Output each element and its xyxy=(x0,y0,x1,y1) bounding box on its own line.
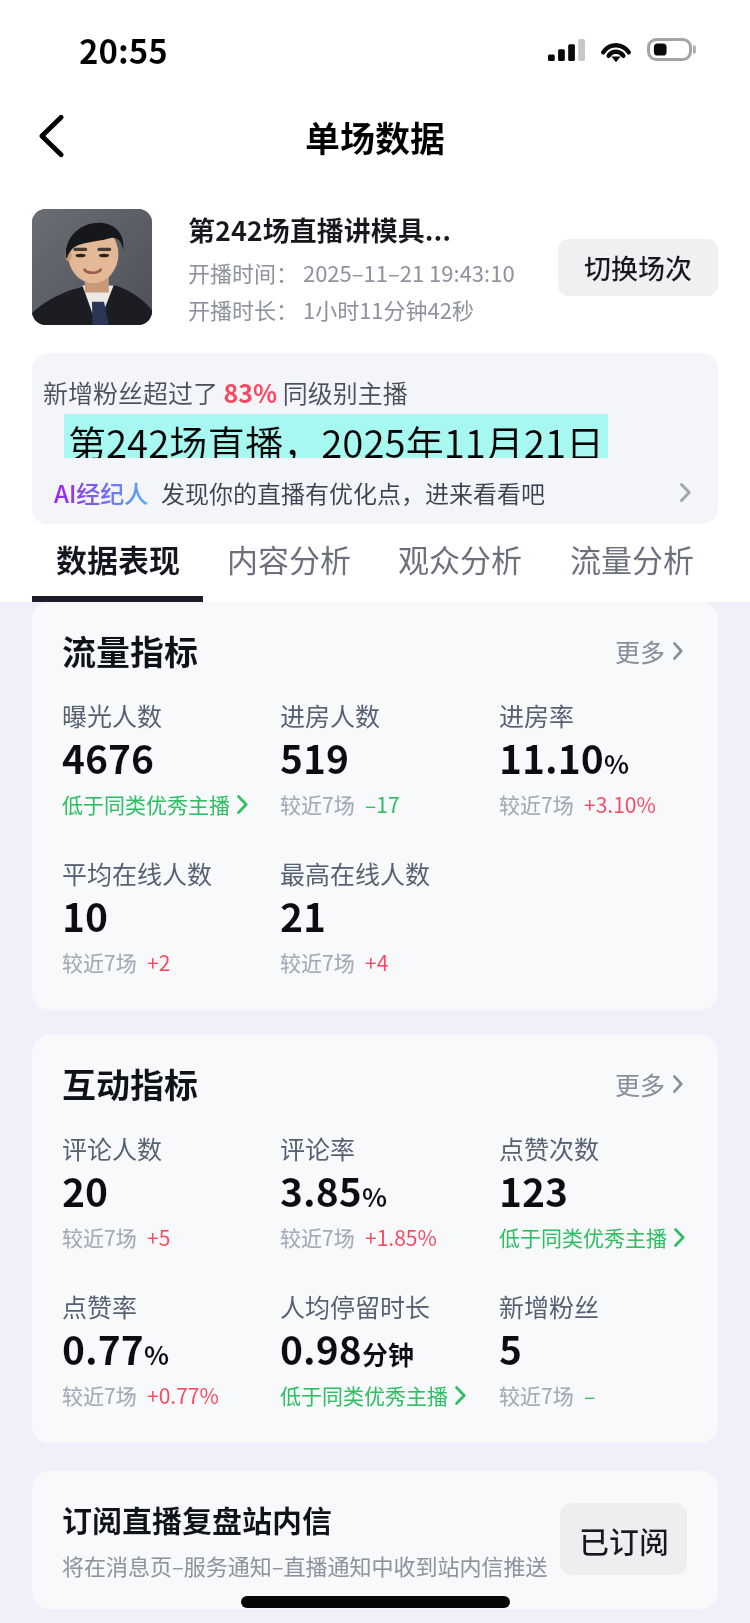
staticText: 较近7场 xyxy=(280,1222,355,1252)
staticText: 切换场次 xyxy=(584,248,692,287)
staticText: 11.10 xyxy=(499,729,604,785)
staticText: 评论人数 xyxy=(62,1130,163,1166)
staticText: 较近7场 xyxy=(499,789,574,819)
staticText: 0.98 xyxy=(280,1320,362,1376)
staticText: 流量分析 xyxy=(570,536,694,581)
staticText: 4676 xyxy=(62,729,155,785)
staticText: +2 xyxy=(147,947,171,977)
staticText: 低于同类优秀主播 xyxy=(499,1222,667,1252)
staticText: 更多 xyxy=(615,633,666,669)
staticText: 10 xyxy=(62,887,109,943)
staticText: 流量指标 xyxy=(62,626,198,675)
button[interactable]: 低于同类优秀主播，查看详情 xyxy=(280,1380,465,1410)
staticText: 将在消息页–服务通知–直播通知中收到站内信推送 xyxy=(62,1549,548,1581)
button[interactable]: 切换场次 xyxy=(558,239,718,296)
staticText: AI经纪人 xyxy=(54,475,149,510)
staticText: 人均停留时长 xyxy=(280,1288,431,1324)
staticText: +1.85% xyxy=(365,1222,437,1252)
staticText: 更多 xyxy=(615,1066,666,1102)
staticText: +4 xyxy=(365,947,389,977)
staticText: 进房率 xyxy=(499,697,575,733)
staticText: 订阅直播复盘站内信 xyxy=(62,1497,332,1540)
staticText: 互动指标 xyxy=(62,1059,198,1108)
staticText: 分钟 xyxy=(362,1335,415,1373)
button[interactable]: 更多 xyxy=(615,1066,682,1102)
staticText: 3.85 xyxy=(280,1162,362,1218)
staticText: 21 xyxy=(280,887,327,943)
staticText: 较近7场 xyxy=(499,1380,574,1410)
staticText: 数据表现 xyxy=(56,536,180,581)
staticText: 发现你的直播有优化点，进来看看吧 xyxy=(161,475,545,510)
staticText: % xyxy=(144,1335,170,1373)
staticText: 曝光人数 xyxy=(62,697,163,733)
button[interactable]: 数据表现 xyxy=(32,524,203,602)
staticText: 较近7场 xyxy=(62,947,137,977)
staticText: 低于同类优秀主播 xyxy=(62,789,230,819)
staticText: 第242场直播，2025年11月21日 xyxy=(68,414,604,458)
button[interactable]: 流量分析 xyxy=(546,524,718,602)
staticText: 20 xyxy=(62,1162,109,1218)
staticText: 519 xyxy=(280,729,350,785)
staticText: 低于同类优秀主播 xyxy=(280,1380,448,1410)
staticText: +3.10% xyxy=(584,789,656,819)
staticText: – xyxy=(584,1380,596,1410)
staticText: % xyxy=(604,744,630,782)
staticText: 123 xyxy=(499,1162,569,1218)
button[interactable]: 内容分析 xyxy=(203,524,374,602)
staticText: 点赞次数 xyxy=(499,1130,600,1166)
button[interactable]: 已订阅 xyxy=(560,1503,687,1575)
button[interactable]: 观众分析 xyxy=(374,524,546,602)
button[interactable]: 返回 xyxy=(14,99,88,173)
staticText: +5 xyxy=(147,1222,171,1252)
staticText: 较近7场 xyxy=(280,789,355,819)
button[interactable]: AI经纪人 发现你的直播有优化点，进来看看吧 xyxy=(32,460,718,524)
staticText: 开播时长： 1小时11分钟42秒 xyxy=(188,293,474,325)
staticText: 评论率 xyxy=(280,1130,356,1166)
staticText: 进房人数 xyxy=(280,697,381,733)
staticText: 0.77 xyxy=(62,1320,144,1376)
staticText: 较近7场 xyxy=(280,947,355,977)
staticText: % xyxy=(362,1177,388,1215)
staticText: 新增粉丝超过了 83% 同级别主播 xyxy=(43,374,408,410)
button[interactable]: 更多 xyxy=(615,633,682,669)
staticText: –17 xyxy=(365,789,400,819)
staticText: 新增粉丝 xyxy=(499,1288,600,1324)
button[interactable]: 低于同类优秀主播，查看详情 xyxy=(62,789,247,819)
staticText: 点赞率 xyxy=(62,1288,138,1324)
staticText: 第242场直播讲模具... xyxy=(188,210,452,249)
staticText: 单场数据 xyxy=(305,111,446,162)
staticText: +0.77% xyxy=(147,1380,219,1410)
staticText: 平均在线人数 xyxy=(62,855,213,891)
button[interactable]: 低于同类优秀主播，查看详情 xyxy=(499,1222,684,1252)
staticText: 已订阅 xyxy=(579,1518,669,1561)
staticText: 较近7场 xyxy=(62,1380,137,1410)
staticText: 开播时间： 2025–11–21 19:43:10 xyxy=(188,256,515,288)
staticText: 观众分析 xyxy=(398,536,522,581)
staticText: 较近7场 xyxy=(62,1222,137,1252)
staticText: 5 xyxy=(499,1320,523,1376)
staticText: 20:55 xyxy=(79,26,168,74)
staticText: 最高在线人数 xyxy=(280,855,431,891)
staticText: 内容分析 xyxy=(227,536,351,581)
